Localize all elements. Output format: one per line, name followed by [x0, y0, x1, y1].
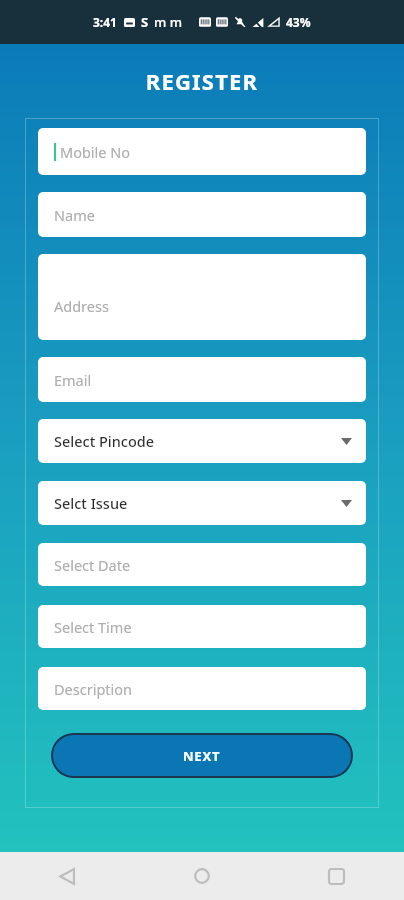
button[interactable]: Email [38, 357, 366, 402]
button[interactable]: Recents [269, 852, 404, 900]
staticText: Selct Issue [54, 493, 128, 513]
button[interactable]: Select Pincode [38, 419, 366, 463]
staticText: Mobile No [60, 142, 131, 162]
staticText: 3:41 [93, 14, 117, 30]
staticText: Select Date [54, 555, 131, 575]
staticText: NEXT [183, 747, 221, 765]
button[interactable]: Name [38, 192, 366, 237]
button[interactable]: Description [38, 667, 366, 710]
staticText: Address [54, 296, 109, 316]
button[interactable]: Select Time [38, 605, 366, 648]
button[interactable]: Selct Issue [38, 481, 366, 525]
staticText: Select Pincode [54, 431, 155, 451]
staticText: 43% [286, 14, 311, 30]
staticText: Select Time [54, 617, 132, 637]
button[interactable]: Address [38, 254, 366, 340]
button[interactable]: Home [134, 852, 269, 900]
staticText: Description [54, 679, 133, 699]
staticText: m m [154, 13, 183, 31]
button[interactable]: Back [0, 852, 134, 900]
staticText: Name [54, 205, 95, 225]
staticText: Email [54, 370, 92, 390]
staticText: REGISTER [0, 66, 404, 96]
button[interactable]: NEXT [51, 733, 353, 778]
button[interactable]: Select Date [38, 543, 366, 586]
button[interactable]: Mobile No [38, 128, 366, 175]
staticText: S [141, 13, 149, 31]
